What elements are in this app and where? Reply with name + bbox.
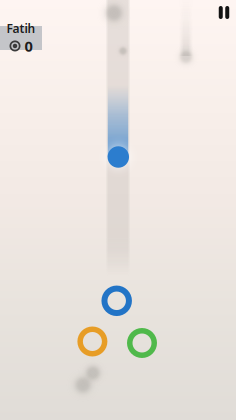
button[interactable]: Fatih — [0, 26, 42, 50]
button[interactable]: Pause — [207, 0, 236, 27]
staticText: 0 — [24, 36, 32, 56]
staticText: Fatih — [6, 20, 35, 36]
